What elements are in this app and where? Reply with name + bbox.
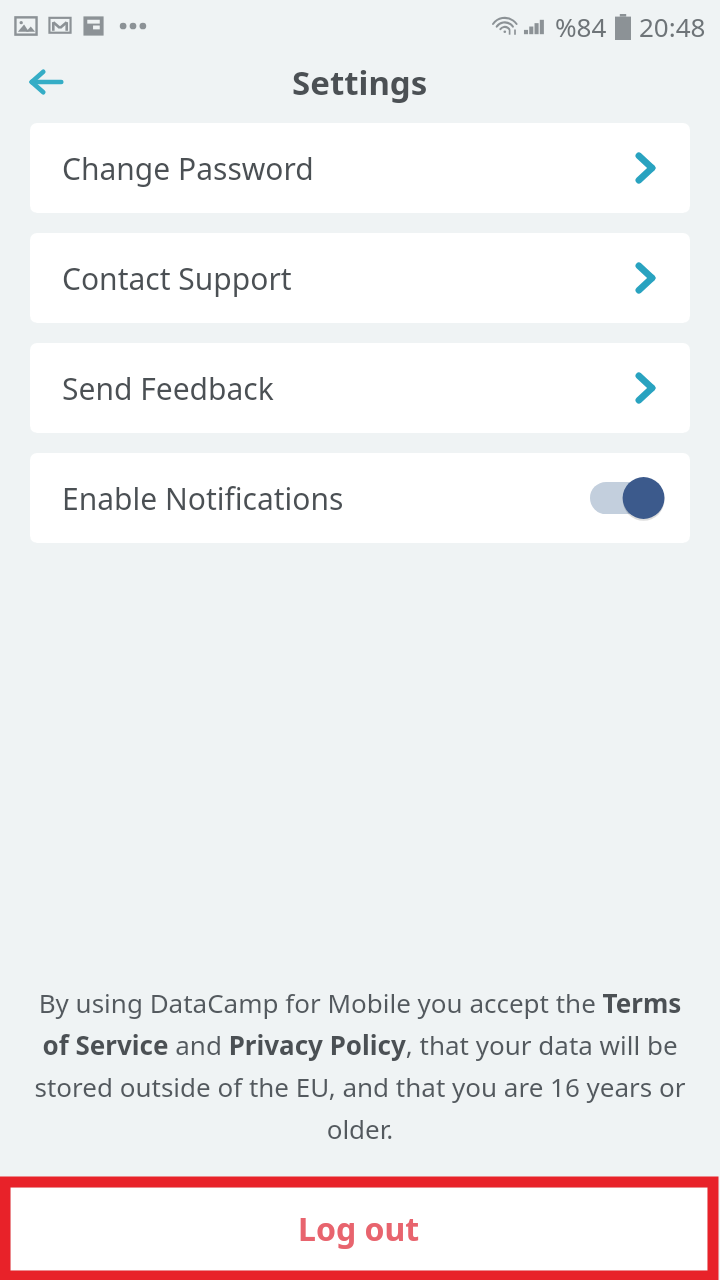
staticText: By using DataCamp for Mobile you accept … xyxy=(28,985,692,1147)
button[interactable]: Change Password xyxy=(30,123,690,213)
button[interactable]: Back xyxy=(18,54,74,110)
staticText: 20:48 xyxy=(639,9,706,44)
staticText: Send Feedback xyxy=(62,368,634,409)
staticText: Settings xyxy=(292,60,428,105)
button[interactable]: Contact Support xyxy=(30,233,690,323)
button[interactable]: Log out xyxy=(11,1188,707,1270)
staticText: Enable Notifications xyxy=(62,478,590,519)
staticText: %84 xyxy=(555,9,607,44)
staticText: Change Password xyxy=(62,148,634,189)
other: Enable Notifications toggle xyxy=(590,475,658,521)
button[interactable]: Send Feedback xyxy=(30,343,690,433)
staticText: Contact Support xyxy=(62,258,634,299)
button[interactable]: Enable Notifications xyxy=(30,453,690,543)
staticText: Log out xyxy=(298,1207,420,1251)
